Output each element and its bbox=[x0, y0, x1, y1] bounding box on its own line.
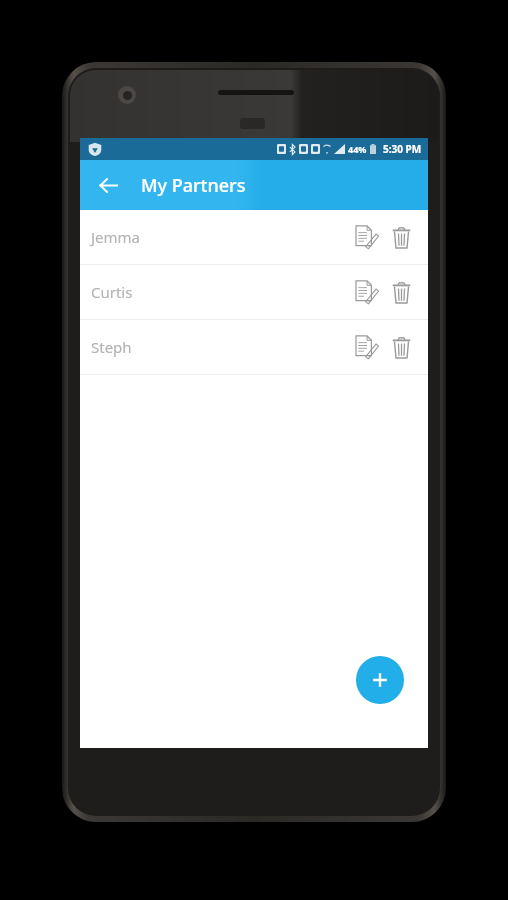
button[interactable]: Delete Curtis bbox=[384, 272, 418, 312]
button[interactable]: Edit Jemma bbox=[350, 217, 384, 257]
button[interactable]: Edit Curtis bbox=[350, 272, 384, 312]
button[interactable]: Curtis bbox=[80, 265, 428, 319]
staticText: 5:30 PM bbox=[383, 142, 422, 156]
button[interactable]: Add partner bbox=[356, 656, 404, 704]
button[interactable]: Jemma bbox=[80, 210, 428, 264]
button[interactable]: Edit Steph bbox=[350, 327, 384, 367]
button[interactable]: Steph bbox=[80, 320, 428, 374]
button[interactable]: Delete Steph bbox=[384, 327, 418, 367]
staticText: 44% bbox=[348, 143, 367, 155]
staticText: Steph bbox=[91, 337, 350, 357]
staticText: Curtis bbox=[91, 282, 350, 302]
staticText: Jemma bbox=[91, 227, 350, 247]
button[interactable]: Delete Jemma bbox=[384, 217, 418, 257]
staticText: My Partners bbox=[141, 173, 246, 198]
button[interactable]: Back bbox=[88, 165, 128, 205]
